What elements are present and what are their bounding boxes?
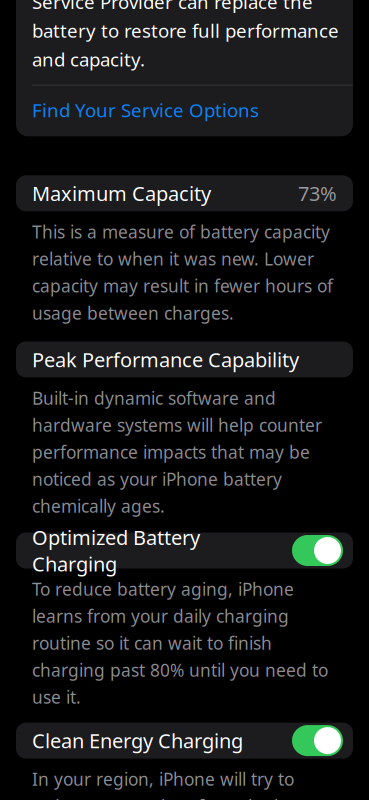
staticText: To reduce battery aging, iPhone learns f… — [32, 577, 328, 709]
staticText: 73% — [298, 180, 337, 207]
button[interactable]: Peak Performance Capability — [16, 341, 353, 377]
button[interactable]: Maximum Capacity — [16, 175, 353, 211]
staticText: This is a measure of battery capacity re… — [32, 220, 333, 324]
button[interactable]: Clean Energy Charging — [16, 723, 353, 759]
staticText: Peak Performance Capability — [32, 346, 299, 373]
staticText: Optimized Battery Charging — [32, 524, 200, 577]
staticText: Maximum Capacity — [32, 180, 211, 207]
staticText: Find Your Service Options — [32, 98, 259, 122]
staticText: Clean Energy Charging — [32, 727, 243, 754]
staticText: In your region, iPhone will try to reduc… — [32, 768, 335, 800]
button[interactable]: Optimized Battery Charging — [16, 532, 353, 568]
staticText: Built-in dynamic software and hardware s… — [32, 386, 322, 517]
staticText: Your battery's health is significantly d… — [32, 0, 347, 72]
button[interactable]: Find Your Service Options — [32, 86, 353, 134]
